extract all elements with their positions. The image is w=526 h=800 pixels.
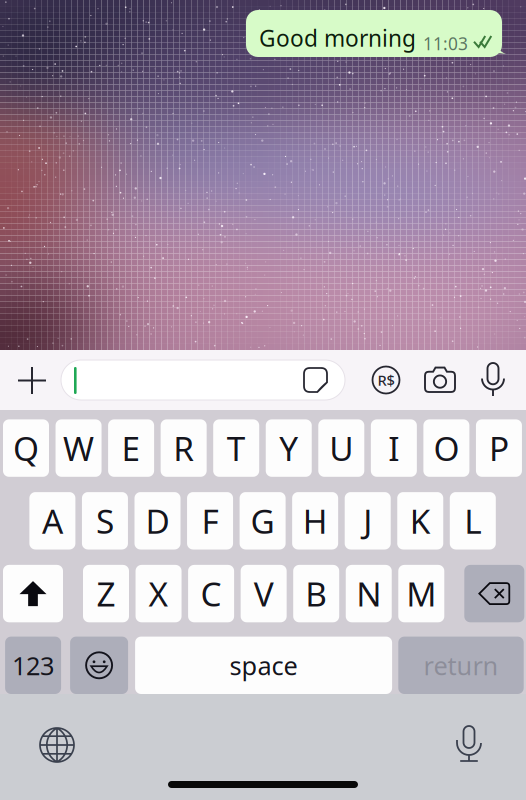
staticText: K [410, 499, 431, 543]
staticText: S [96, 499, 114, 543]
button[interactable]: H [292, 492, 338, 549]
staticText: space [230, 648, 298, 682]
button[interactable]: I [371, 419, 417, 477]
staticText: H [303, 499, 328, 543]
button[interactable]: Switch keyboard [40, 728, 74, 762]
button[interactable]: P [476, 419, 522, 477]
button[interactable]: return [398, 637, 524, 694]
staticText: G [251, 499, 275, 543]
button[interactable]: Z [83, 565, 129, 622]
button[interactable]: Y [266, 419, 312, 477]
staticText: R [173, 426, 194, 470]
button[interactable]: Payments [369, 363, 403, 397]
staticText: I [388, 426, 399, 470]
button[interactable]: N [346, 565, 392, 622]
button[interactable]: X [136, 565, 182, 622]
staticText: Q [13, 426, 39, 470]
staticText: P [489, 426, 509, 470]
button[interactable]: Emoji [70, 637, 128, 694]
button[interactable]: U [318, 419, 364, 477]
button[interactable]: A [29, 492, 75, 549]
staticText: N [356, 571, 381, 616]
staticText: D [145, 499, 169, 543]
button[interactable]: Dictation [456, 726, 482, 762]
button[interactable]: F [187, 492, 233, 549]
staticText: B [305, 571, 327, 616]
staticText: Good morning [259, 23, 416, 53]
button[interactable]: L [450, 492, 496, 549]
staticText: M [406, 571, 436, 616]
button[interactable]: Q [3, 419, 49, 477]
button[interactable]: M [398, 565, 444, 622]
button[interactable]: Voice message [482, 363, 504, 396]
staticText: F [201, 499, 218, 543]
staticText: U [329, 426, 353, 470]
staticText: 11:03 [423, 32, 468, 55]
staticText: J [363, 499, 372, 543]
button[interactable]: R [161, 419, 207, 477]
button[interactable]: W [55, 419, 101, 477]
staticText: L [464, 499, 481, 543]
staticText: R$ [377, 370, 394, 390]
button[interactable]: space [135, 637, 392, 694]
button[interactable]: K [397, 492, 443, 549]
staticText: X [149, 571, 169, 616]
button[interactable]: Delete [464, 565, 524, 622]
staticText: W [63, 426, 94, 470]
staticText: E [122, 426, 141, 470]
button[interactable]: Attach [7, 356, 57, 405]
button[interactable]: E [108, 419, 154, 477]
button[interactable]: D [134, 492, 180, 549]
staticText: O [433, 426, 459, 470]
staticText: A [42, 499, 63, 543]
button[interactable]: B [293, 565, 339, 622]
button[interactable]: J [345, 492, 391, 549]
staticText: Z [96, 571, 115, 616]
button[interactable]: Shift [3, 565, 63, 622]
button[interactable]: Camera [425, 366, 455, 392]
staticText: return [423, 648, 498, 682]
button[interactable]: V [241, 565, 287, 622]
button[interactable]: O [423, 419, 469, 477]
staticText: 123 [12, 648, 54, 682]
staticText: C [201, 571, 222, 616]
button[interactable]: G [240, 492, 286, 549]
button[interactable]: S [82, 492, 128, 549]
staticText: V [254, 571, 274, 616]
button[interactable]: 123 [5, 637, 61, 694]
button[interactable]: C [188, 565, 234, 622]
button[interactable]: T [213, 419, 259, 477]
staticText: T [227, 426, 246, 470]
staticText: Y [279, 426, 298, 470]
